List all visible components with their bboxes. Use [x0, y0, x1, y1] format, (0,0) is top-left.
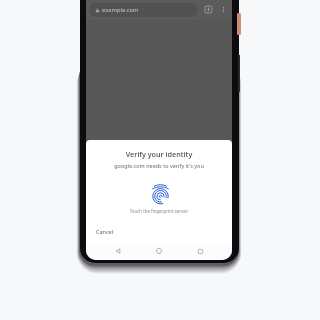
staticText: example.com — [102, 6, 139, 14]
button[interactable]: Back — [108, 242, 128, 260]
button[interactable]: Cancel — [91, 225, 119, 238]
button[interactable]: Recent apps — [190, 242, 210, 260]
staticText: Touch the fingerprint sensor — [86, 208, 232, 214]
button[interactable]: Home — [149, 242, 169, 260]
staticText: google.com needs to verify it's you — [86, 162, 232, 169]
staticText: Cancel — [96, 228, 114, 235]
button[interactable]: More options — [219, 5, 228, 14]
button[interactable]: Downloads — [204, 5, 213, 14]
staticText: Verify your identity — [86, 149, 232, 159]
button[interactable]: example.com — [89, 3, 198, 17]
